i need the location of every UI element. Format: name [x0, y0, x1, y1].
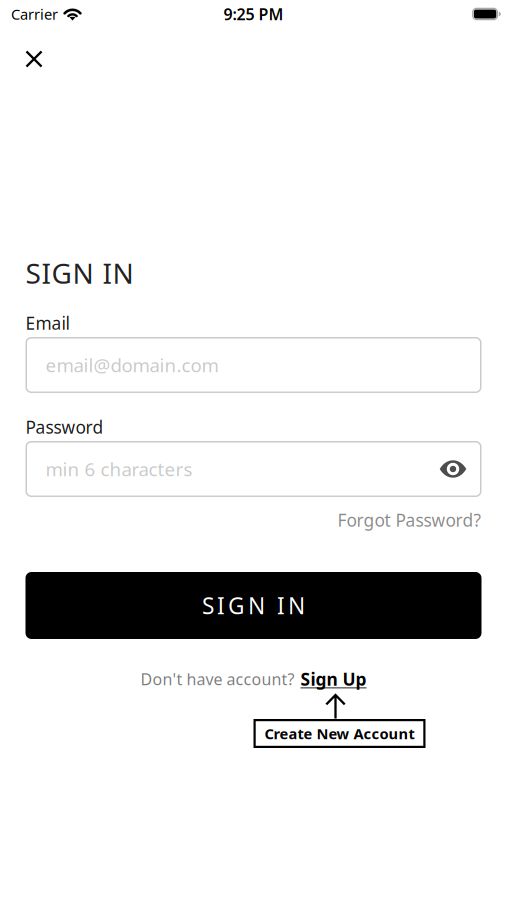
button[interactable]: Forgot Password? [25, 509, 481, 531]
button[interactable]: Show password [431, 447, 475, 491]
button[interactable]: Sign Up [300, 667, 366, 690]
staticText: Email [25, 311, 69, 334]
staticText: Password [25, 415, 103, 438]
staticText: min 6 characters [45, 457, 192, 481]
staticText: Forgot Password? [337, 508, 481, 531]
staticText: SIGN IN [25, 254, 133, 292]
staticText: 9:25 PM [223, 3, 283, 25]
staticText: email@domain.com [45, 353, 218, 377]
staticText: Carrier [11, 4, 58, 24]
staticText: Create New Account [264, 724, 414, 743]
staticText: SIGN IN [202, 590, 305, 620]
button[interactable]: SIGN IN [25, 572, 481, 639]
staticText: Don't have account? [140, 668, 294, 690]
staticText: Sign Up [300, 667, 366, 690]
button[interactable]: Close [12, 41, 56, 77]
